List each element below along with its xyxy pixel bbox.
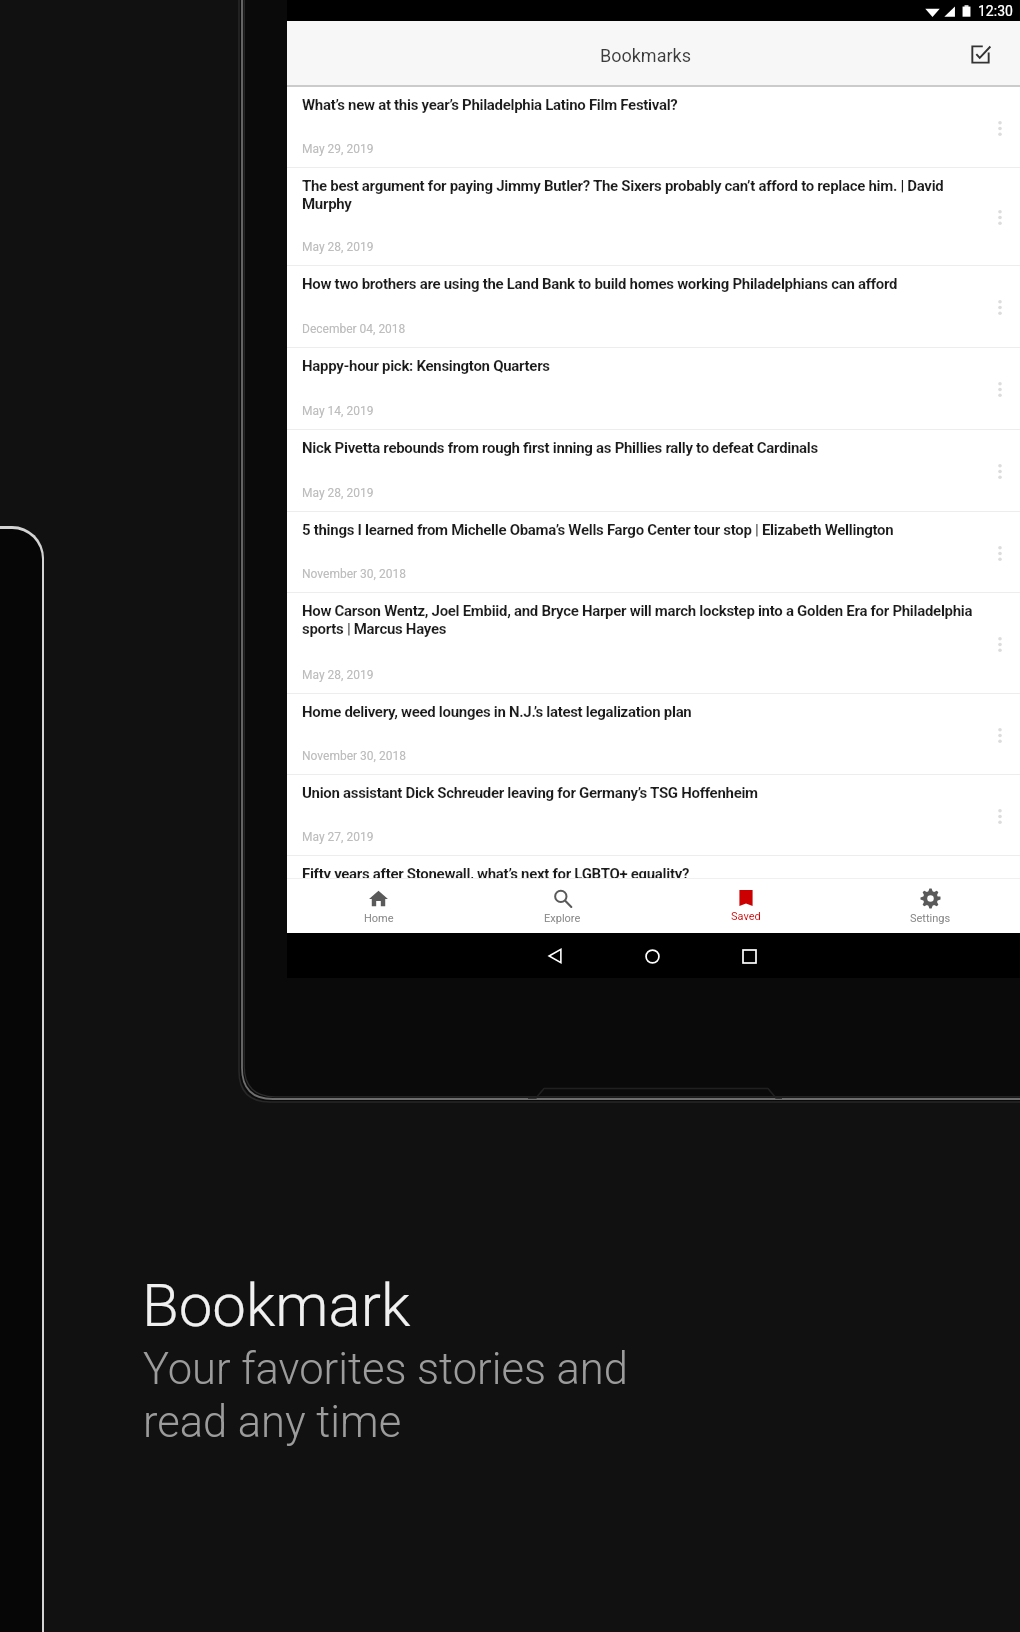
button[interactable]: Saved	[654, 879, 838, 933]
button[interactable]: Home delivery, weed lounges in N.J.’s la…	[287, 694, 1020, 775]
staticText: Settings	[910, 912, 951, 925]
staticText: Nick Pivetta rebounds from rough first i…	[302, 439, 982, 457]
button[interactable]: More options	[985, 801, 1015, 831]
button[interactable]: More options	[985, 374, 1015, 404]
staticText: December 04, 2018	[302, 322, 406, 336]
button[interactable]: The best argument for paying Jimmy Butle…	[287, 168, 1020, 266]
button[interactable]: Select bookmarks	[964, 38, 996, 70]
staticText: May 28, 2019	[302, 240, 374, 254]
staticText: November 30, 2018	[302, 749, 406, 763]
staticText: Home delivery, weed lounges in N.J.’s la…	[302, 703, 982, 721]
button[interactable]: What’s new at this year’s Philadelphia L…	[287, 87, 1020, 168]
staticText: May 27, 2019	[302, 830, 374, 844]
button[interactable]: More options	[985, 292, 1015, 322]
button[interactable]: Union assistant Dick Schreuder leaving f…	[287, 775, 1020, 856]
button[interactable]: More options	[985, 629, 1015, 659]
staticText: How Carson Wentz, Joel Embiid, and Bryce…	[302, 602, 982, 638]
button[interactable]: More options	[985, 456, 1015, 486]
staticText: May 29, 2019	[302, 142, 374, 156]
staticText: Saved	[731, 910, 761, 923]
staticText: May 28, 2019	[302, 486, 374, 500]
button[interactable]: Back	[533, 934, 577, 978]
staticText: Your favorites stories and read any time	[143, 1344, 628, 1448]
button[interactable]: More options	[985, 202, 1015, 232]
staticText: Fifty years after Stonewall, what’s next…	[302, 865, 982, 883]
button[interactable]: Home	[287, 879, 470, 933]
staticText: November 30, 2018	[302, 567, 406, 581]
staticText: Explore	[544, 912, 581, 925]
staticText: The best argument for paying Jimmy Butle…	[302, 177, 982, 213]
staticText: Home	[364, 912, 394, 925]
button[interactable]: 5 things I learned from Michelle Obama’s…	[287, 512, 1020, 593]
button[interactable]: More options	[985, 538, 1015, 568]
staticText: 12:30	[978, 3, 1013, 19]
staticText: Happy-hour pick: Kensington Quarters	[302, 357, 982, 375]
staticText: 5 things I learned from Michelle Obama’s…	[302, 521, 982, 539]
staticText: Union assistant Dick Schreuder leaving f…	[302, 784, 982, 802]
button[interactable]: How Carson Wentz, Joel Embiid, and Bryce…	[287, 593, 1020, 694]
button[interactable]: Nick Pivetta rebounds from rough first i…	[287, 430, 1020, 512]
button[interactable]: More options	[985, 720, 1015, 750]
button[interactable]: Happy-hour pick: Kensington Quarters	[287, 348, 1020, 430]
staticText: May 14, 2019	[302, 404, 374, 418]
button[interactable]: Explore	[470, 879, 654, 933]
staticText: What’s new at this year’s Philadelphia L…	[302, 96, 982, 114]
button[interactable]: More options	[985, 113, 1015, 143]
staticText: Bookmark	[142, 1270, 411, 1340]
button[interactable]: How two brothers are using the Land Bank…	[287, 266, 1020, 348]
button[interactable]: Fifty years after Stonewall, what’s next…	[287, 856, 1020, 933]
button[interactable]: Settings	[838, 879, 1020, 933]
button[interactable]: Home	[630, 934, 674, 978]
staticText: How two brothers are using the Land Bank…	[302, 275, 982, 293]
staticText: May 28, 2019	[302, 668, 374, 682]
button[interactable]: Recent apps	[727, 934, 771, 978]
staticText: Bookmarks	[600, 45, 691, 66]
